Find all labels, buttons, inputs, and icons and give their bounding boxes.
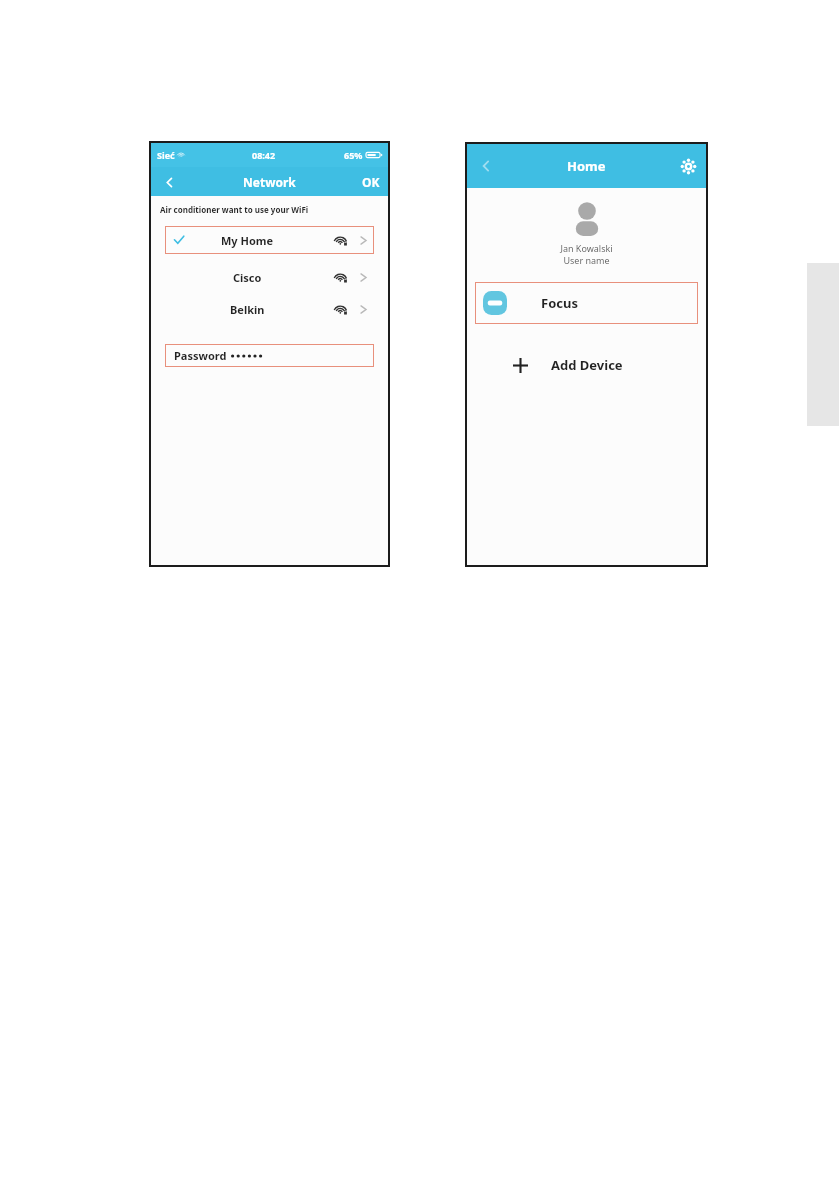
button[interactable]: My Home [165,226,374,254]
button[interactable]: Back [473,153,499,179]
staticText: 65% [344,149,363,161]
button[interactable]: Belkin [165,299,374,319]
staticText: Home [567,157,606,175]
staticText: Focus [541,294,578,312]
button[interactable]: Password [165,344,374,367]
button[interactable]: Back [157,170,181,194]
button[interactable]: Settings [677,155,699,177]
staticText: Sieć [157,149,175,161]
staticText: 08:42 [252,149,276,161]
staticText: Network [243,174,296,190]
staticText: User name [563,254,610,266]
button[interactable]: Add Device [475,350,698,380]
staticText: Cisco [233,270,262,285]
staticText: Add Device [551,356,623,374]
staticText: Password [174,348,227,363]
button[interactable]: OK [362,174,380,190]
staticText: Air conditioner want to use your WiFi [160,204,309,215]
staticText: Jan Kowalski [560,242,613,254]
staticText: Belkin [230,302,265,317]
button[interactable]: Focus [475,282,698,324]
button[interactable]: Cisco [165,267,374,287]
staticText: OK [362,174,380,190]
staticText: My Home [221,233,274,248]
